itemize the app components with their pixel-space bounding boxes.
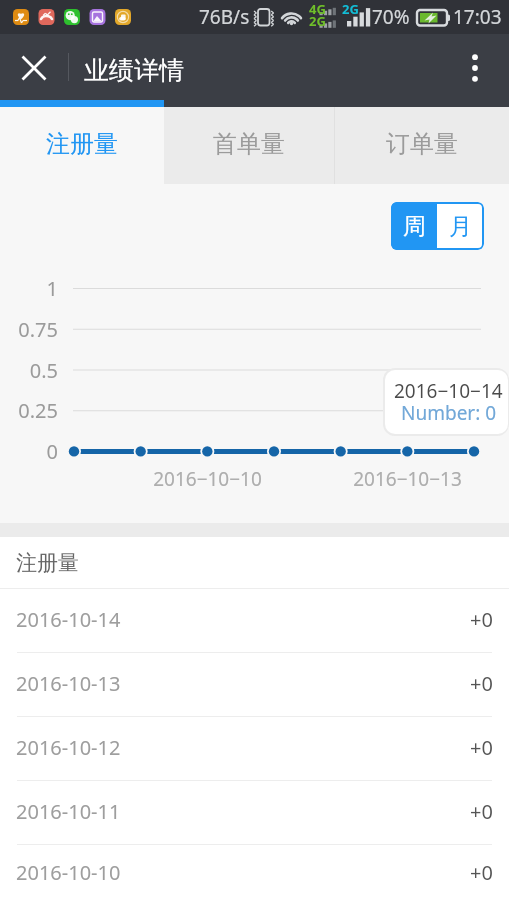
- button[interactable]: 首单量: [164, 107, 334, 184]
- staticText: 0.25: [0, 397, 58, 424]
- staticText: +0: [470, 859, 493, 886]
- button[interactable]: 2016-10-12: [0, 717, 509, 781]
- staticText: 2016−10−14: [394, 378, 503, 404]
- staticText: 月: [449, 212, 472, 241]
- staticText: 76B/s: [199, 4, 250, 30]
- staticText: 2016−10−13: [350, 466, 465, 492]
- button[interactable]: 2016-10-13: [0, 653, 509, 717]
- staticText: +0: [470, 734, 493, 761]
- button[interactable]: 订单量: [335, 107, 509, 184]
- staticText: Number: 0: [401, 400, 497, 426]
- staticText: 2016-10-11: [16, 798, 121, 825]
- staticText: 业绩详情: [84, 55, 184, 86]
- staticText: 17:03: [453, 4, 502, 30]
- button[interactable]: 2016-10-14: [0, 589, 509, 653]
- staticText: 首单量: [213, 129, 285, 159]
- staticText: 2016−10−10: [150, 466, 265, 492]
- button[interactable]: 月: [437, 202, 484, 250]
- staticText: 70%: [372, 4, 410, 30]
- staticText: 注册量: [16, 550, 79, 576]
- staticText: +0: [470, 606, 493, 633]
- staticText: 2G: [342, 0, 359, 18]
- button[interactable]: More options: [443, 34, 509, 100]
- staticText: 2016-10-13: [16, 670, 121, 697]
- staticText: 2016-10-10: [16, 859, 121, 886]
- button[interactable]: 注册量: [0, 107, 164, 184]
- staticText: 1: [0, 275, 58, 302]
- staticText: +0: [470, 670, 493, 697]
- button[interactable]: 2016-10-10: [0, 845, 509, 904]
- staticText: 0.75: [0, 316, 58, 343]
- staticText: 2016-10-14: [16, 606, 121, 633]
- staticText: 0: [0, 438, 58, 465]
- staticText: 4G: [309, 0, 326, 18]
- staticText: 订单量: [386, 129, 458, 159]
- staticText: 周: [403, 212, 426, 241]
- staticText: 2G: [309, 12, 326, 30]
- staticText: +0: [470, 798, 493, 825]
- staticText: 注册量: [46, 129, 118, 159]
- button[interactable]: 2016-10-11: [0, 781, 509, 845]
- button[interactable]: 周: [391, 202, 437, 250]
- staticText: 2016-10-12: [16, 734, 121, 761]
- staticText: 0.5: [0, 357, 58, 384]
- button[interactable]: Close: [0, 34, 66, 100]
